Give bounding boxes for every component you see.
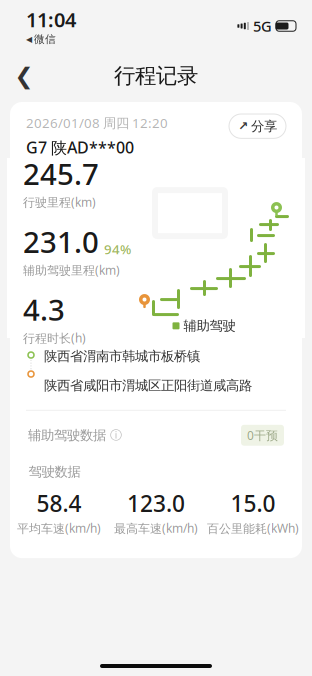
button[interactable]: 辅助驾驶数据	[10, 411, 302, 460]
staticText: 最高车速(km/h)	[114, 520, 198, 536]
staticText: 驾驶数据	[28, 464, 80, 480]
staticText: ❮	[14, 63, 33, 89]
staticText: 辅助驾驶里程(km)	[23, 262, 120, 278]
staticText: 行程时长(h)	[23, 330, 86, 346]
staticText: 231.0	[23, 222, 99, 261]
staticText: ↗	[238, 119, 248, 133]
staticText: 辅助驾驶数据	[28, 427, 106, 443]
staticText: 15.0	[230, 488, 275, 518]
staticText: G7 陕AD***00	[26, 137, 134, 158]
staticText: 陕西省咸阳市渭城区正阳街道咸高路	[44, 377, 252, 394]
staticText: 行驶里程(km)	[23, 194, 96, 210]
staticText: 陕西省渭南市韩城市板桥镇	[44, 348, 200, 364]
staticText: 4.3	[23, 290, 65, 329]
staticText: 分享	[251, 118, 277, 134]
staticText: 0干预	[247, 427, 278, 443]
staticText: 微信	[34, 33, 56, 46]
staticText: 5G	[253, 16, 272, 36]
staticText: ⓘ	[106, 428, 122, 443]
staticText: 平均车速(km/h)	[17, 520, 101, 536]
staticText: ◀	[26, 35, 32, 44]
staticText: 11:04	[26, 6, 76, 33]
button[interactable]: ↗	[229, 114, 286, 138]
button[interactable]: 返回	[4, 56, 44, 96]
staticText: 245.7	[23, 154, 99, 193]
staticText: 94%	[104, 240, 131, 258]
staticText: 123.0	[127, 488, 185, 518]
staticText: 行程记录	[114, 63, 198, 89]
staticText: 2026/01/08 周四 12:20	[26, 114, 168, 132]
staticText: 辅助驾驶	[183, 318, 235, 334]
staticText: 百公里能耗(kWh)	[207, 520, 299, 536]
staticText: 58.4	[36, 488, 81, 518]
